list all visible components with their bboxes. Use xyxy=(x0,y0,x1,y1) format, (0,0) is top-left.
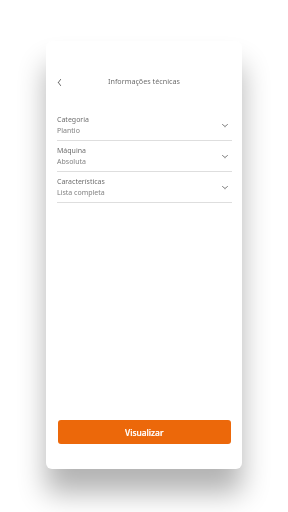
staticText: Lista completa xyxy=(57,188,105,198)
button[interactable]: Características xyxy=(46,177,242,208)
staticText: Informações técnicas xyxy=(108,76,180,86)
staticText: Absoluta xyxy=(57,157,86,167)
button[interactable]: Visualizar xyxy=(58,420,231,444)
button[interactable]: Back xyxy=(47,70,71,94)
button[interactable]: Categoria xyxy=(46,115,242,146)
staticText: Plantio xyxy=(57,126,80,136)
staticText: Visualizar xyxy=(125,427,164,438)
button[interactable]: Máquina xyxy=(46,146,242,177)
staticText: Máquina xyxy=(57,146,86,156)
staticText: Características xyxy=(57,177,105,187)
staticText: Categoria xyxy=(57,115,89,125)
